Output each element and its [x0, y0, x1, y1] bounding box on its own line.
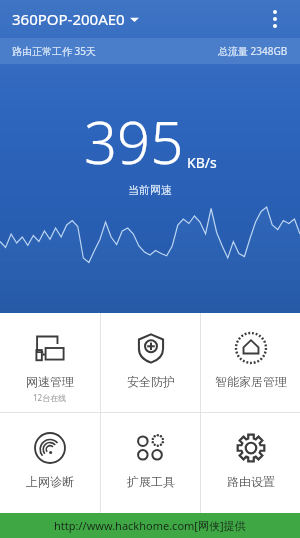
staticText: KB/s — [187, 153, 217, 172]
staticText: http://www.hackhome.com[网侠]提供 — [54, 518, 246, 533]
staticText: 上网诊断 — [26, 474, 74, 489]
button[interactable]: More options — [258, 2, 292, 36]
button[interactable]: 路由设置 — [201, 413, 300, 513]
staticText: 路由正常工作 35天 — [12, 44, 97, 58]
staticText: 网速管理 — [26, 374, 74, 389]
button[interactable]: 安全防护 — [101, 313, 200, 412]
staticText: 总流量 2348GB — [218, 44, 288, 58]
staticText: 12台在线 — [33, 392, 67, 403]
button[interactable]: 智能家居管理 — [201, 313, 300, 412]
staticText: 智能家居管理 — [215, 374, 287, 389]
button[interactable]: 扩展工具 — [101, 413, 200, 513]
staticText: 395 — [84, 102, 184, 181]
staticText: 路由设置 — [227, 474, 275, 489]
button[interactable]: 上网诊断 — [0, 413, 100, 513]
button[interactable]: 网速管理 — [0, 313, 100, 412]
button[interactable]: 360POP-200AE0 — [12, 9, 258, 29]
staticText: 360POP-200AE0 — [12, 9, 125, 29]
staticText: 安全防护 — [127, 374, 175, 389]
staticText: 扩展工具 — [127, 474, 175, 489]
staticText: 当前网速 — [0, 183, 300, 197]
